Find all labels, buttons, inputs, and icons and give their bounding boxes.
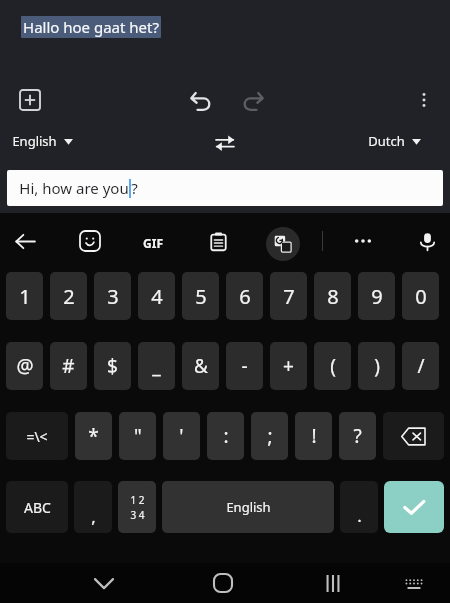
staticText: &: [194, 353, 208, 379]
staticText: +: [283, 353, 294, 379]
button[interactable]: #: [50, 342, 87, 390]
button[interactable]: ,: [74, 481, 112, 533]
staticText: 4: [151, 283, 163, 310]
button[interactable]: ): [358, 342, 395, 390]
button[interactable]: Translate: [266, 227, 300, 261]
button[interactable]: Add: [14, 84, 46, 116]
button[interactable]: $: [94, 342, 131, 390]
button[interactable]: English: [8, 128, 77, 154]
staticText: $: [107, 353, 118, 379]
button[interactable]: 7: [270, 272, 307, 320]
staticText: 1: [19, 283, 31, 310]
button[interactable]: Backspace: [383, 412, 444, 460]
button[interactable]: ": [119, 412, 156, 460]
staticText: 8: [327, 283, 339, 310]
button[interactable]: 3: [94, 272, 131, 320]
staticText: =\<: [26, 427, 48, 446]
button[interactable]: (: [314, 342, 351, 390]
staticText: Hi, how are you: [19, 178, 129, 198]
button[interactable]: Dutch: [364, 128, 425, 154]
staticText: English: [12, 132, 57, 150]
staticText: 6: [239, 283, 251, 310]
button[interactable]: :: [207, 412, 244, 460]
button[interactable]: ABC: [6, 481, 68, 533]
staticText: #: [62, 353, 75, 379]
staticText: ": [134, 423, 142, 449]
button[interactable]: ': [163, 412, 200, 460]
staticText: ?: [353, 423, 362, 449]
staticText: Hallo hoe gaat het?: [23, 17, 159, 37]
button[interactable]: 0: [402, 272, 439, 320]
button[interactable]: Home: [208, 568, 238, 598]
staticText: 5: [195, 283, 207, 310]
button[interactable]: Voice input: [410, 224, 444, 258]
staticText: ): [374, 353, 380, 379]
button[interactable]: More: [346, 224, 380, 258]
staticText: GIF: [143, 235, 163, 251]
staticText: 9: [371, 283, 383, 310]
button[interactable]: Redo: [236, 84, 270, 118]
staticText: Dutch: [368, 132, 405, 150]
staticText: 3 4: [130, 508, 145, 522]
button[interactable]: _: [138, 342, 175, 390]
staticText: 2: [63, 283, 75, 310]
staticText: _: [152, 353, 161, 379]
button[interactable]: Done: [384, 481, 444, 533]
button[interactable]: 1: [6, 272, 43, 320]
staticText: /: [417, 353, 425, 379]
button[interactable]: @: [6, 342, 43, 390]
button[interactable]: !: [295, 412, 332, 460]
staticText: ;: [267, 423, 273, 449]
staticText: 1 2: [130, 493, 145, 507]
staticText: 3: [107, 283, 119, 310]
staticText: @: [16, 353, 34, 379]
button[interactable]: Recent apps: [318, 568, 348, 598]
button[interactable]: .: [340, 481, 378, 533]
button[interactable]: Hi, how are you: [7, 170, 443, 206]
staticText: !: [311, 423, 317, 449]
staticText: :: [223, 423, 229, 449]
button[interactable]: More options: [408, 84, 440, 116]
staticText: .: [357, 504, 362, 527]
staticText: ,: [91, 505, 96, 528]
button[interactable]: +: [270, 342, 307, 390]
button[interactable]: =\<: [6, 412, 68, 460]
button[interactable]: 8: [314, 272, 351, 320]
button[interactable]: Undo: [184, 84, 218, 118]
button[interactable]: -: [226, 342, 263, 390]
staticText: 7: [283, 283, 295, 310]
staticText: *: [88, 423, 99, 449]
staticText: 0: [415, 283, 427, 310]
staticText: -: [241, 353, 248, 379]
button[interactable]: 6: [226, 272, 263, 320]
button[interactable]: Back: [8, 224, 42, 258]
button[interactable]: English: [162, 481, 334, 533]
button[interactable]: 2: [50, 272, 87, 320]
button[interactable]: 4: [138, 272, 175, 320]
button[interactable]: Hide keyboard: [90, 569, 118, 597]
button[interactable]: &: [182, 342, 219, 390]
button[interactable]: Stickers: [73, 224, 107, 258]
staticText: (: [330, 353, 336, 379]
button[interactable]: GIF: [135, 225, 171, 261]
button[interactable]: ?: [339, 412, 376, 460]
button[interactable]: Keyboard settings: [400, 570, 428, 598]
button[interactable]: *: [75, 412, 112, 460]
button[interactable]: 9: [358, 272, 395, 320]
staticText: ': [179, 423, 184, 449]
button[interactable]: ;: [251, 412, 288, 460]
button[interactable]: Swap languages: [208, 126, 242, 160]
button[interactable]: Numbers: [118, 481, 156, 533]
button[interactable]: Clipboard: [201, 224, 235, 258]
button[interactable]: /: [402, 342, 439, 390]
staticText: ABC: [24, 498, 51, 517]
button[interactable]: 5: [182, 272, 219, 320]
staticText: ?: [131, 178, 138, 198]
button[interactable]: Hallo hoe gaat het?: [21, 16, 161, 38]
staticText: English: [226, 498, 271, 516]
